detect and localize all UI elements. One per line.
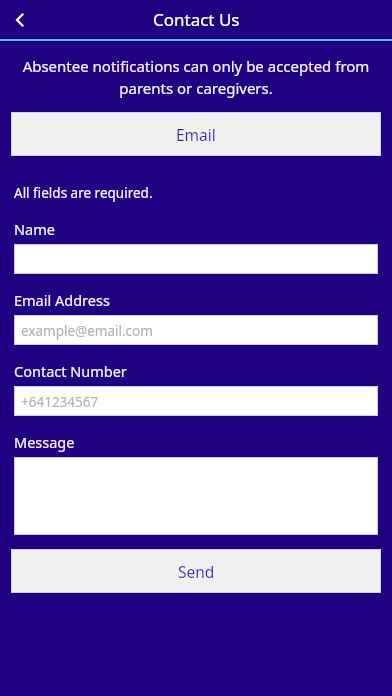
button[interactable]: Email <box>11 112 381 156</box>
button[interactable] <box>14 457 378 535</box>
button[interactable]: example@email.com <box>14 315 378 345</box>
staticText: Email Address <box>14 290 110 310</box>
staticText: All fields are required. <box>14 184 153 202</box>
button[interactable]: Send <box>11 549 381 593</box>
staticText: +641234567 <box>21 393 99 411</box>
button[interactable]: +641234567 <box>14 386 378 416</box>
button[interactable] <box>14 244 378 274</box>
staticText: Contact Us <box>153 8 240 31</box>
staticText: Absentee notifications can only be accep… <box>20 56 372 99</box>
staticText: Message <box>14 432 75 452</box>
button[interactable]: Back <box>0 0 40 39</box>
staticText: Send <box>178 561 215 582</box>
staticText: Contact Number <box>14 361 127 381</box>
staticText: example@email.com <box>21 322 153 340</box>
staticText: Email <box>176 124 216 145</box>
staticText: Name <box>14 219 55 239</box>
